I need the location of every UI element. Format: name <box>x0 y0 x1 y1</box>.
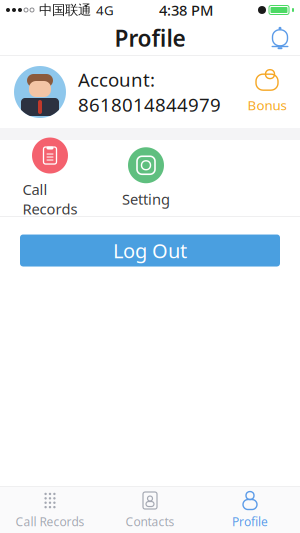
button[interactable]: Call Records <box>14 137 86 218</box>
button[interactable]: Profile <box>200 487 300 533</box>
button[interactable]: Notifications <box>260 18 300 58</box>
staticText: Call Records <box>22 179 77 218</box>
button[interactable]: Account: 8618014844979 <box>0 56 300 128</box>
button[interactable]: Call Records <box>0 487 100 533</box>
staticText: 4G <box>96 1 114 19</box>
button[interactable]: Log Out <box>20 234 280 266</box>
staticText: Contacts <box>125 513 174 529</box>
staticText: Account: 8618014844979 <box>78 67 221 117</box>
staticText: Bonus <box>247 96 286 114</box>
staticText: Profile <box>114 23 185 53</box>
staticText: Setting <box>122 189 170 209</box>
staticText: Profile <box>232 513 268 529</box>
staticText: Log Out <box>113 237 187 264</box>
staticText: 中国联通 <box>39 2 91 18</box>
button[interactable]: Bonus <box>246 70 288 114</box>
staticText: Call Records <box>15 513 84 529</box>
staticText: 4:38 PM <box>159 0 213 20</box>
button[interactable]: Setting <box>110 147 182 209</box>
button[interactable]: Contacts <box>100 487 200 533</box>
